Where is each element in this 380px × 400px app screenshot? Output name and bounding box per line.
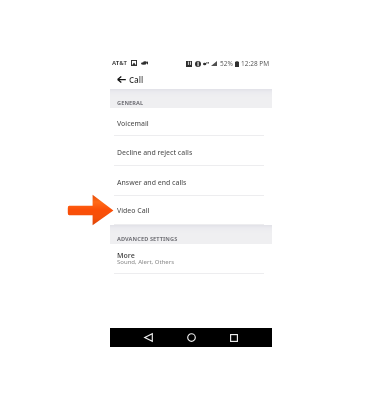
button[interactable]: Recent apps: [214, 328, 254, 347]
staticText: Call: [129, 74, 144, 85]
button[interactable]: Decline and reject calls: [110, 136, 272, 166]
staticText: 12:28 PM: [241, 59, 270, 68]
staticText: Voicemail: [117, 119, 149, 128]
staticText: GENERAL: [117, 99, 144, 107]
button[interactable]: Answer and end calls: [110, 166, 272, 196]
button[interactable]: Video Call: [110, 196, 272, 225]
staticText: AT&T: [112, 59, 128, 67]
staticText: Video Call: [117, 206, 150, 215]
button[interactable]: More: [110, 244, 272, 274]
button[interactable]: Back: [128, 328, 168, 347]
staticText: 52%: [220, 59, 233, 68]
staticText: Sound, Alert, Others: [117, 258, 175, 266]
button[interactable]: Voicemail: [110, 108, 272, 136]
staticText: ADVANCED SETTINGS: [117, 235, 178, 243]
staticText: Decline and reject calls: [117, 148, 193, 157]
button[interactable]: Navigate up: [113, 71, 129, 87]
staticText: Answer and end calls: [117, 178, 187, 187]
button[interactable]: Home: [171, 328, 211, 347]
staticText: More: [117, 251, 135, 261]
